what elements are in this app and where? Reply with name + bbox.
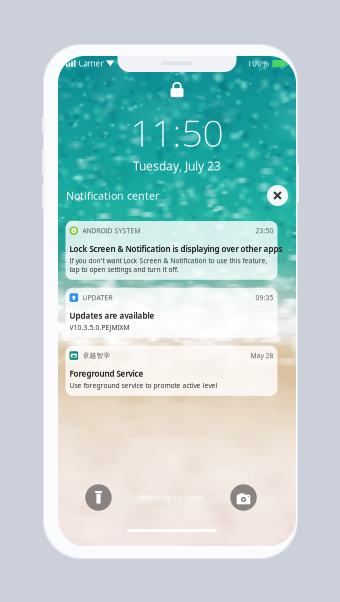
- staticText: May 28: [250, 351, 273, 360]
- staticText: Foreground Service: [69, 368, 143, 379]
- button[interactable]: Flashlight: [85, 484, 112, 511]
- staticText: Swipe up to open: [138, 492, 204, 503]
- button[interactable]: Close notification center: [266, 184, 289, 207]
- button[interactable]: Camera: [230, 484, 257, 511]
- staticText: UPDATER: [83, 293, 113, 302]
- staticText: 09:35: [255, 293, 273, 302]
- staticText: 11:50: [130, 107, 223, 157]
- button[interactable]: UPDATER: [65, 288, 277, 338]
- button[interactable]: 卓越智学: [65, 346, 277, 396]
- staticText: 卓越智学: [83, 351, 111, 360]
- staticText: Lock Screen & Notification is displaying…: [69, 243, 282, 254]
- staticText: 100%: [247, 58, 269, 69]
- staticText: V10.3.5.0.PEJMIXM: [69, 323, 129, 332]
- staticText: Tuesday, July 23: [133, 158, 221, 174]
- staticText: ANDROID SYSTEM: [83, 226, 141, 235]
- staticText: If you don't want Lock Screen & Notifica…: [69, 256, 267, 265]
- staticText: 23:50: [255, 226, 273, 235]
- staticText: tap to open settings and turn it off.: [69, 265, 178, 274]
- button[interactable]: ANDROID SYSTEM: [65, 221, 277, 280]
- staticText: Carrier: [78, 58, 103, 69]
- staticText: Updates are available: [69, 310, 154, 321]
- staticText: Use foreground service to promote active…: [69, 381, 217, 390]
- staticText: Notification center: [66, 188, 159, 203]
